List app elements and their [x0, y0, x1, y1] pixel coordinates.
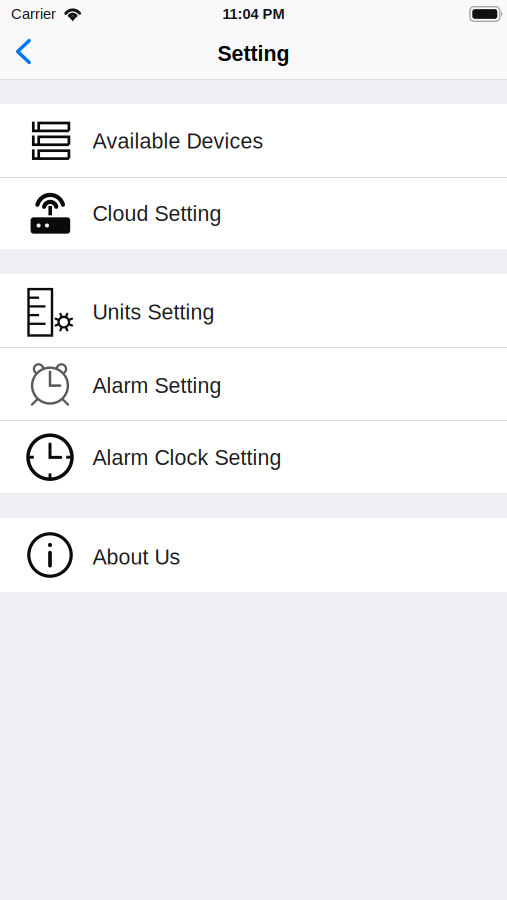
staticText: Setting	[217, 42, 289, 65]
button[interactable]: Cloud Setting	[0, 178, 507, 249]
staticText: Available Devices	[92, 129, 263, 153]
button[interactable]: Alarm Setting	[0, 348, 507, 420]
button[interactable]: About Us	[0, 518, 507, 592]
button[interactable]: Units Setting	[0, 274, 507, 347]
staticText: Cloud Setting	[92, 202, 221, 225]
button[interactable]: Alarm Clock Setting	[0, 421, 507, 493]
staticText: Alarm Setting	[92, 374, 221, 397]
staticText: Carrier	[11, 6, 56, 22]
button[interactable]: Available Devices	[0, 104, 507, 177]
staticText: 11:04 PM	[222, 6, 284, 22]
staticText: Alarm Clock Setting	[92, 446, 281, 469]
staticText: Units Setting	[92, 300, 214, 324]
staticText: About Us	[92, 545, 180, 569]
button[interactable]: Back	[0, 28, 49, 79]
